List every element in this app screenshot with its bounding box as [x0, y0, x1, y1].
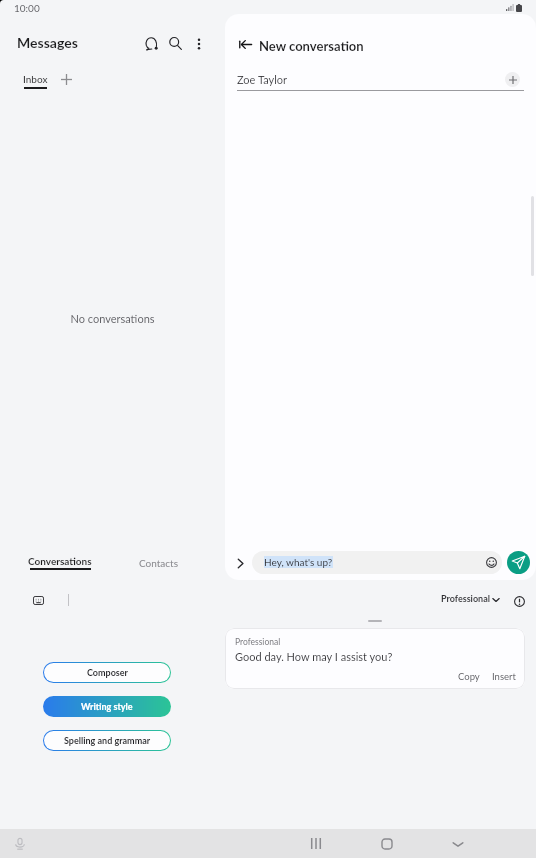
button[interactable]: Home — [357, 829, 417, 858]
other: Voice input — [14, 838, 26, 850]
staticText: New conversation — [259, 38, 364, 54]
button[interactable]: Conversations — [20, 555, 100, 577]
staticText: 10:00 — [14, 2, 40, 14]
staticText: Conversations — [28, 555, 92, 567]
button[interactable]: Hey, what's up? — [252, 551, 502, 574]
staticText: Composer — [87, 667, 128, 678]
button[interactable]: More options — [185, 30, 212, 57]
button[interactable]: Back — [428, 829, 488, 858]
staticText: No conversations — [0, 312, 225, 325]
staticText: Contacts — [139, 557, 179, 569]
other: Emoji — [486, 557, 497, 568]
staticText: Insert — [492, 671, 516, 682]
button[interactable]: Search — [162, 30, 189, 57]
button[interactable]: Recents — [285, 829, 347, 858]
staticText: Inbox — [23, 73, 48, 85]
button[interactable]: Send — [507, 551, 530, 574]
button[interactable]: Professional — [225, 628, 525, 689]
staticText: Copy — [458, 671, 480, 682]
button[interactable]: Back — [231, 30, 259, 58]
button[interactable]: Expand — [228, 551, 252, 575]
staticText: Good day. How may I assist you? — [235, 650, 393, 663]
button[interactable]: Spelling and grammar — [44, 731, 170, 750]
button[interactable]: Inbox — [15, 73, 55, 97]
button[interactable]: Contacts — [131, 555, 187, 571]
button[interactable]: Composer — [44, 663, 170, 682]
staticText: Messages — [17, 34, 78, 51]
button[interactable]: New chat — [138, 30, 165, 57]
button[interactable]: Copy — [457, 669, 481, 684]
button[interactable]: Writing style — [43, 696, 171, 717]
button[interactable]: Info — [510, 592, 528, 610]
staticText: Hey, what's up? — [264, 556, 333, 568]
button[interactable]: Add — [55, 68, 78, 91]
staticText: Spelling and grammar — [64, 735, 151, 746]
button[interactable]: Keyboard — [27, 589, 49, 611]
staticText: Professional — [235, 637, 281, 647]
button[interactable]: Add recipient — [505, 72, 520, 87]
staticText: Writing style — [81, 701, 133, 712]
button[interactable]: Professional — [441, 593, 490, 604]
button[interactable]: Insert — [491, 669, 517, 684]
staticText: Zoe Taylor — [237, 73, 287, 86]
